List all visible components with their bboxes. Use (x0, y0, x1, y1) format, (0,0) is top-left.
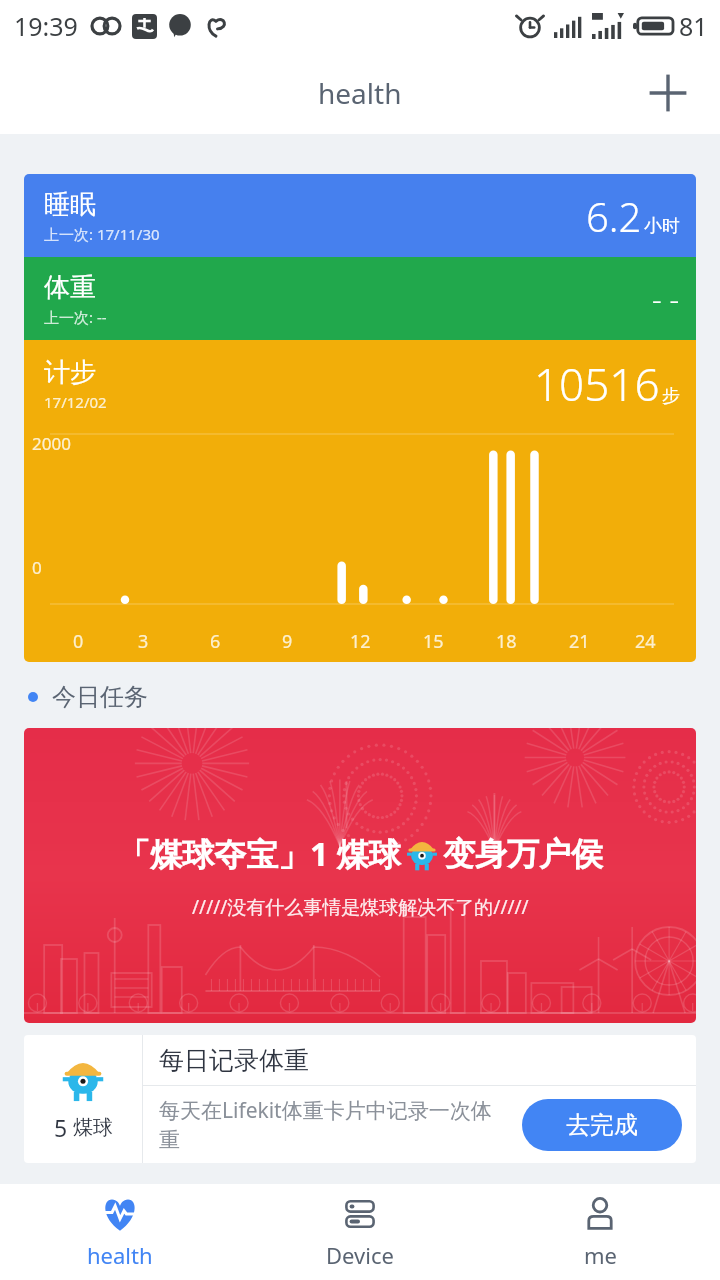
button[interactable]: 体重 (24, 257, 696, 340)
staticText: 24 (635, 629, 656, 654)
button[interactable]: me (480, 1184, 720, 1280)
staticText: 小时 (644, 215, 680, 238)
staticText: 15 (423, 629, 444, 654)
button[interactable]: 「煤球夺宝」1 煤球 (24, 728, 696, 1023)
staticText: 上一次: 17/11/30 (44, 224, 160, 244)
button[interactable]: Device (240, 1184, 480, 1280)
staticText: 5 (54, 1112, 68, 1143)
staticText: 计步 (44, 356, 96, 389)
staticText: 去完成 (566, 1110, 638, 1140)
button[interactable]: 计步 (24, 340, 696, 662)
staticText: 步 (662, 385, 680, 408)
button[interactable]: Add (640, 65, 696, 121)
staticText: 今日任务 (52, 682, 148, 712)
staticText: 每天在Lifekit体重卡片中记录一次体重 (159, 1096, 512, 1153)
staticText: 上一次: -- (44, 307, 107, 327)
staticText: 3 (138, 629, 149, 654)
staticText: 煤球 (73, 1115, 113, 1140)
staticText: 6.2 (586, 189, 642, 243)
staticText: 6 (210, 629, 221, 654)
staticText: 变身万户侯 (443, 834, 603, 874)
button[interactable]: health (0, 1184, 240, 1280)
button[interactable]: 去完成 (522, 1099, 682, 1151)
staticText: 体重 (44, 271, 96, 304)
staticText: 0 (32, 556, 42, 579)
button[interactable]: 5 (24, 1035, 696, 1163)
staticText: health (318, 74, 402, 112)
staticText: health (87, 1240, 153, 1270)
staticText: 18 (496, 629, 517, 654)
staticText: 21 (569, 629, 590, 654)
staticText: 睡眠 (44, 188, 96, 221)
staticText: 81 (679, 9, 708, 43)
staticText: 每日记录体重 (159, 1045, 309, 1076)
staticText: - - (652, 278, 680, 319)
staticText: 19:39 (14, 9, 78, 43)
button[interactable]: 睡眠 (24, 174, 696, 257)
staticText: 「煤球夺宝」1 煤球 (118, 832, 401, 876)
staticText: 2000 (32, 432, 71, 455)
staticText: 17/12/02 (44, 392, 107, 412)
staticText: /////没有什么事情是煤球解决不了的///// (192, 894, 529, 920)
staticText: 12 (350, 629, 371, 654)
staticText: me (584, 1240, 617, 1270)
staticText: Device (326, 1240, 394, 1270)
staticText: 10516 (534, 354, 660, 414)
staticText: 0 (73, 629, 84, 654)
staticText: 9 (282, 629, 293, 654)
